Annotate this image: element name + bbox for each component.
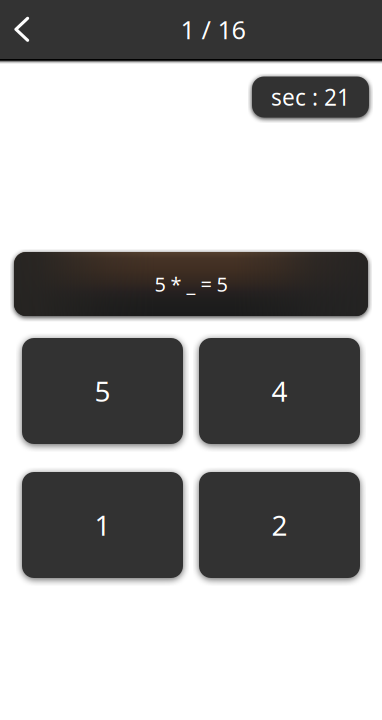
staticText: 4 [271,372,287,410]
button[interactable]: Back [0,0,60,58]
staticText: 5 [94,372,110,410]
staticText: 2 [271,506,287,544]
staticText: 1 / 16 [180,13,245,46]
button[interactable]: sec : 21 [252,76,369,117]
staticText: 5 * _ = 5 [154,271,227,297]
button[interactable]: 4 [199,338,360,444]
button[interactable]: 1 [22,472,183,578]
button[interactable]: 2 [199,472,360,578]
button[interactable]: 5 [22,338,183,444]
staticText: 1 [94,506,110,544]
staticText: sec : 21 [271,82,350,112]
